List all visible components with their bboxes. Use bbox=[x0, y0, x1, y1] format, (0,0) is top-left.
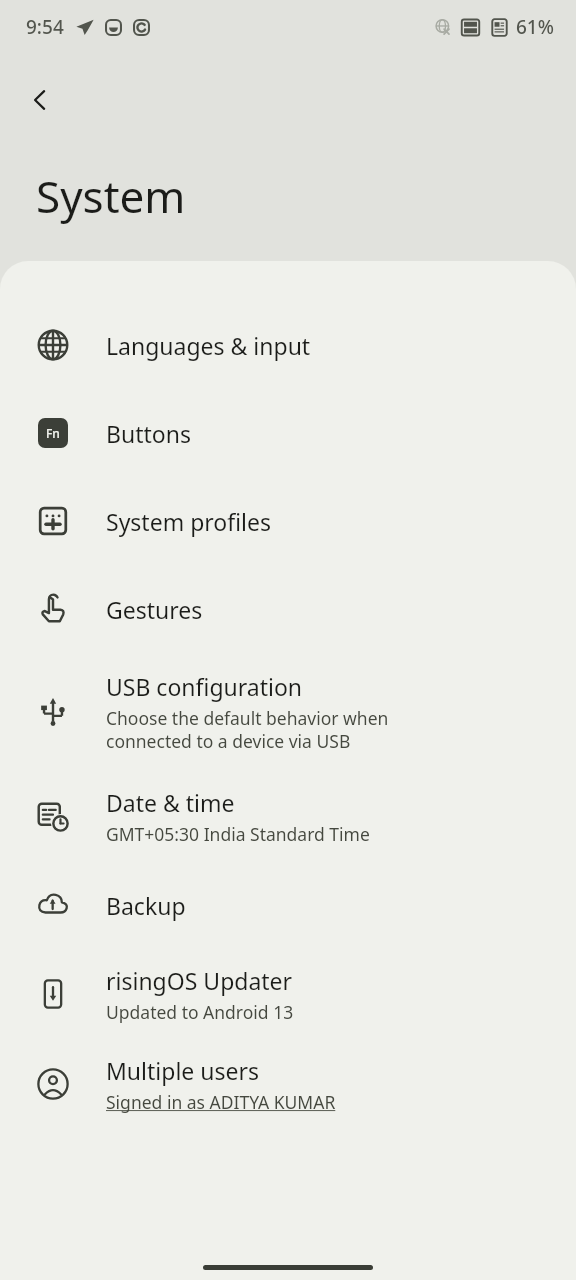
staticText: USB configuration bbox=[106, 671, 303, 702]
staticText: Buttons bbox=[106, 418, 191, 449]
button[interactable]: Fn bbox=[0, 389, 576, 477]
button[interactable]: risingOS Updater bbox=[0, 949, 576, 1039]
staticText: Signed in as ADITYA KUMAR bbox=[106, 1090, 336, 1114]
button[interactable]: Multiple users bbox=[0, 1039, 576, 1129]
staticText: risingOS Updater bbox=[106, 965, 293, 996]
staticText: Languages & input bbox=[106, 330, 311, 361]
button[interactable]: Gestures bbox=[0, 565, 576, 653]
button[interactable]: Languages & input bbox=[0, 301, 576, 389]
button[interactable]: Backup bbox=[0, 861, 576, 949]
staticText: System bbox=[36, 166, 186, 226]
button[interactable]: System profiles bbox=[0, 477, 576, 565]
staticText: GMT+05:30 India Standard Time bbox=[106, 822, 370, 846]
staticText: Gestures bbox=[106, 594, 203, 625]
staticText: 61% bbox=[516, 14, 554, 40]
staticText: Updated to Android 13 bbox=[106, 1000, 294, 1024]
staticText: Choose the default behavior when connect… bbox=[106, 706, 389, 753]
staticText: 9:54 bbox=[26, 14, 64, 40]
staticText: System profiles bbox=[106, 506, 272, 537]
staticText: Multiple users bbox=[106, 1055, 259, 1086]
button[interactable]: USB configuration bbox=[0, 653, 576, 771]
button[interactable]: Back bbox=[14, 74, 66, 126]
staticText: Backup bbox=[106, 890, 186, 921]
staticText: Fn bbox=[46, 425, 60, 441]
staticText: Date & time bbox=[106, 787, 235, 818]
button[interactable]: Date & time bbox=[0, 771, 576, 861]
